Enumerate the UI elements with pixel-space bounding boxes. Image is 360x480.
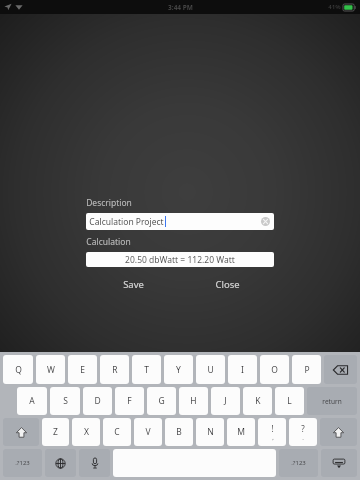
button[interactable]: Y	[164, 355, 193, 384]
button[interactable]: I	[228, 355, 257, 384]
button[interactable]: return	[307, 387, 357, 415]
button[interactable]: Clear text	[261, 217, 270, 226]
button[interactable]: O	[260, 355, 289, 384]
staticText: Calculation Project	[89, 216, 164, 228]
staticText: Z	[53, 426, 58, 438]
button[interactable]: Calculation Project	[86, 213, 274, 230]
button[interactable]: X	[72, 418, 100, 446]
button[interactable]: !	[258, 418, 286, 446]
button[interactable]: P	[292, 355, 321, 384]
button[interactable]: E	[68, 355, 97, 384]
button[interactable]: .?123	[3, 449, 42, 477]
button[interactable]: U	[196, 355, 225, 384]
staticText: U	[207, 364, 214, 376]
button[interactable]: L	[275, 387, 304, 415]
staticText: G	[158, 395, 165, 407]
staticText: ,	[272, 434, 274, 442]
staticText: B	[176, 426, 182, 438]
button[interactable]: A	[17, 387, 47, 415]
button[interactable]: Hide keyboard	[321, 449, 357, 477]
button[interactable]: Switch keyboard	[45, 449, 76, 477]
button[interactable]: Close	[180, 275, 274, 293]
staticText: Q	[15, 364, 22, 376]
button[interactable]: B	[165, 418, 193, 446]
staticText: T	[144, 364, 149, 376]
staticText: D	[94, 395, 101, 407]
staticText: Close	[215, 278, 240, 291]
staticText: 41%	[328, 3, 341, 11]
button[interactable]: ?	[289, 418, 317, 446]
button[interactable]: Q	[3, 355, 33, 384]
staticText: M	[237, 426, 245, 438]
staticText: .	[302, 434, 304, 442]
staticText: Calculation	[86, 236, 131, 248]
button[interactable]: 20.50 dbWatt = 112.20 Watt	[86, 252, 274, 267]
button[interactable]: Shift	[3, 418, 39, 446]
staticText: Description	[86, 197, 132, 209]
staticText: L	[287, 395, 292, 407]
button[interactable]: T	[132, 355, 161, 384]
button[interactable]: Shift	[320, 418, 357, 446]
staticText: F	[127, 395, 132, 407]
button[interactable]: S	[50, 387, 80, 415]
button[interactable]: K	[243, 387, 272, 415]
staticText: N	[207, 426, 214, 438]
button[interactable]: Z	[42, 418, 69, 446]
staticText: J	[224, 395, 227, 407]
staticText: 20.50 dbWatt = 112.20 Watt	[125, 254, 235, 266]
button[interactable]: H	[179, 387, 208, 415]
staticText: !	[271, 423, 274, 434]
button[interactable]: .?123	[279, 449, 318, 477]
button[interactable]: D	[83, 387, 112, 415]
staticText: V	[145, 426, 151, 438]
staticText: R	[112, 364, 118, 376]
staticText: O	[271, 364, 278, 376]
staticText: 3:44 PM	[168, 3, 193, 12]
staticText: H	[190, 395, 197, 407]
button[interactable]: Dictation	[79, 449, 110, 477]
staticText: C	[114, 426, 120, 438]
staticText: .?123	[15, 459, 30, 467]
button[interactable]: Save	[86, 275, 180, 293]
staticText: K	[255, 395, 261, 407]
button[interactable]: C	[103, 418, 131, 446]
staticText: I	[241, 364, 244, 376]
staticText: W	[47, 364, 55, 376]
staticText: ?	[301, 423, 305, 434]
staticText: E	[80, 364, 85, 376]
staticText: Save	[123, 278, 144, 291]
button[interactable]: W	[36, 355, 65, 384]
button[interactable]: V	[134, 418, 162, 446]
staticText: A	[29, 395, 35, 407]
button[interactable]: G	[147, 387, 176, 415]
button[interactable]: Backspace	[324, 355, 357, 384]
staticText: .?123	[291, 459, 306, 467]
staticText: S	[63, 395, 68, 407]
button[interactable]: R	[100, 355, 129, 384]
button[interactable]: F	[115, 387, 144, 415]
staticText: return	[322, 397, 342, 406]
staticText: P	[304, 364, 310, 376]
staticText: X	[84, 426, 89, 438]
button[interactable]: N	[196, 418, 224, 446]
button[interactable]: M	[227, 418, 255, 446]
button[interactable]: J	[211, 387, 240, 415]
staticText: Y	[176, 364, 181, 376]
